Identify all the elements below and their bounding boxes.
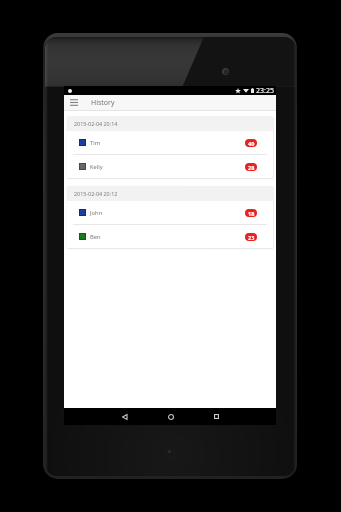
button[interactable]: Ben bbox=[67, 225, 273, 248]
staticText: 2015-02-04 20:12 bbox=[74, 190, 118, 197]
staticText: 28 bbox=[248, 164, 255, 171]
staticText: History bbox=[91, 98, 115, 108]
staticText: John bbox=[90, 209, 103, 217]
staticText: Ben bbox=[90, 233, 101, 241]
button[interactable]: Kelly bbox=[67, 155, 273, 178]
staticText: 23 bbox=[248, 234, 255, 241]
staticText: 23:25 bbox=[256, 86, 274, 95]
button[interactable]: Open navigation menu bbox=[64, 95, 84, 110]
button[interactable]: Back bbox=[110, 408, 139, 425]
staticText: 2015-02-04 20:14 bbox=[74, 120, 118, 127]
button[interactable]: Home bbox=[156, 408, 185, 425]
button[interactable]: John bbox=[67, 201, 273, 224]
button[interactable]: Tim bbox=[67, 131, 273, 154]
staticText: 40 bbox=[248, 140, 255, 147]
button[interactable]: Recent apps bbox=[202, 408, 231, 425]
staticText: Kelly bbox=[90, 163, 103, 171]
staticText: Tim bbox=[90, 139, 101, 147]
staticText: 18 bbox=[248, 210, 255, 217]
